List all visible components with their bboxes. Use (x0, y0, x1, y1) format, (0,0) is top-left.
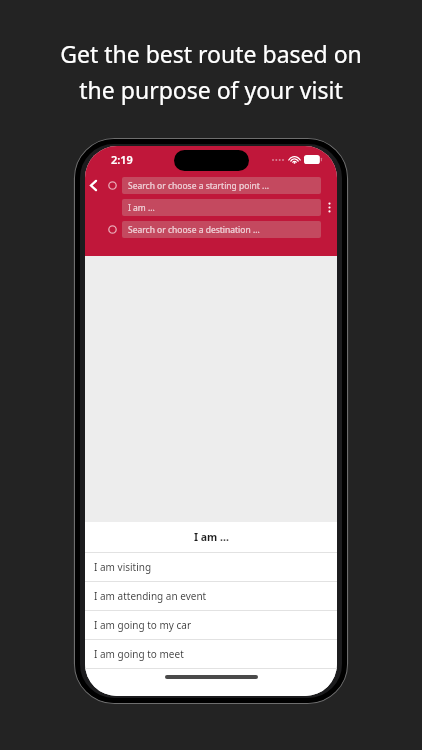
button[interactable]: Search or choose a destination ... (122, 221, 321, 238)
staticText: I am visiting (94, 560, 152, 574)
button[interactable]: Search or choose a starting point ... (122, 177, 321, 194)
button[interactable]: I am attending an event (85, 582, 337, 610)
staticText: 2:19 (111, 152, 133, 167)
staticText: I am ... (128, 202, 155, 214)
staticText: I am going to my car (94, 618, 192, 632)
staticText: Get the best route based on (60, 38, 362, 69)
button[interactable]: Back (85, 176, 102, 195)
staticText: Search or choose a destination ... (128, 224, 260, 236)
button[interactable]: I am ... (122, 199, 321, 216)
button[interactable]: I am going to my car (85, 611, 337, 639)
staticText: I am going to meet (94, 647, 184, 661)
staticText: I am attending an event (94, 589, 207, 603)
button[interactable]: I am going to meet (85, 640, 337, 668)
staticText: the purpose of your visit (79, 74, 343, 105)
staticText: I am ... (194, 530, 229, 544)
staticText: Search or choose a starting point ... (128, 180, 269, 192)
button[interactable]: I am visiting (85, 553, 337, 581)
button[interactable]: More options (321, 202, 337, 213)
